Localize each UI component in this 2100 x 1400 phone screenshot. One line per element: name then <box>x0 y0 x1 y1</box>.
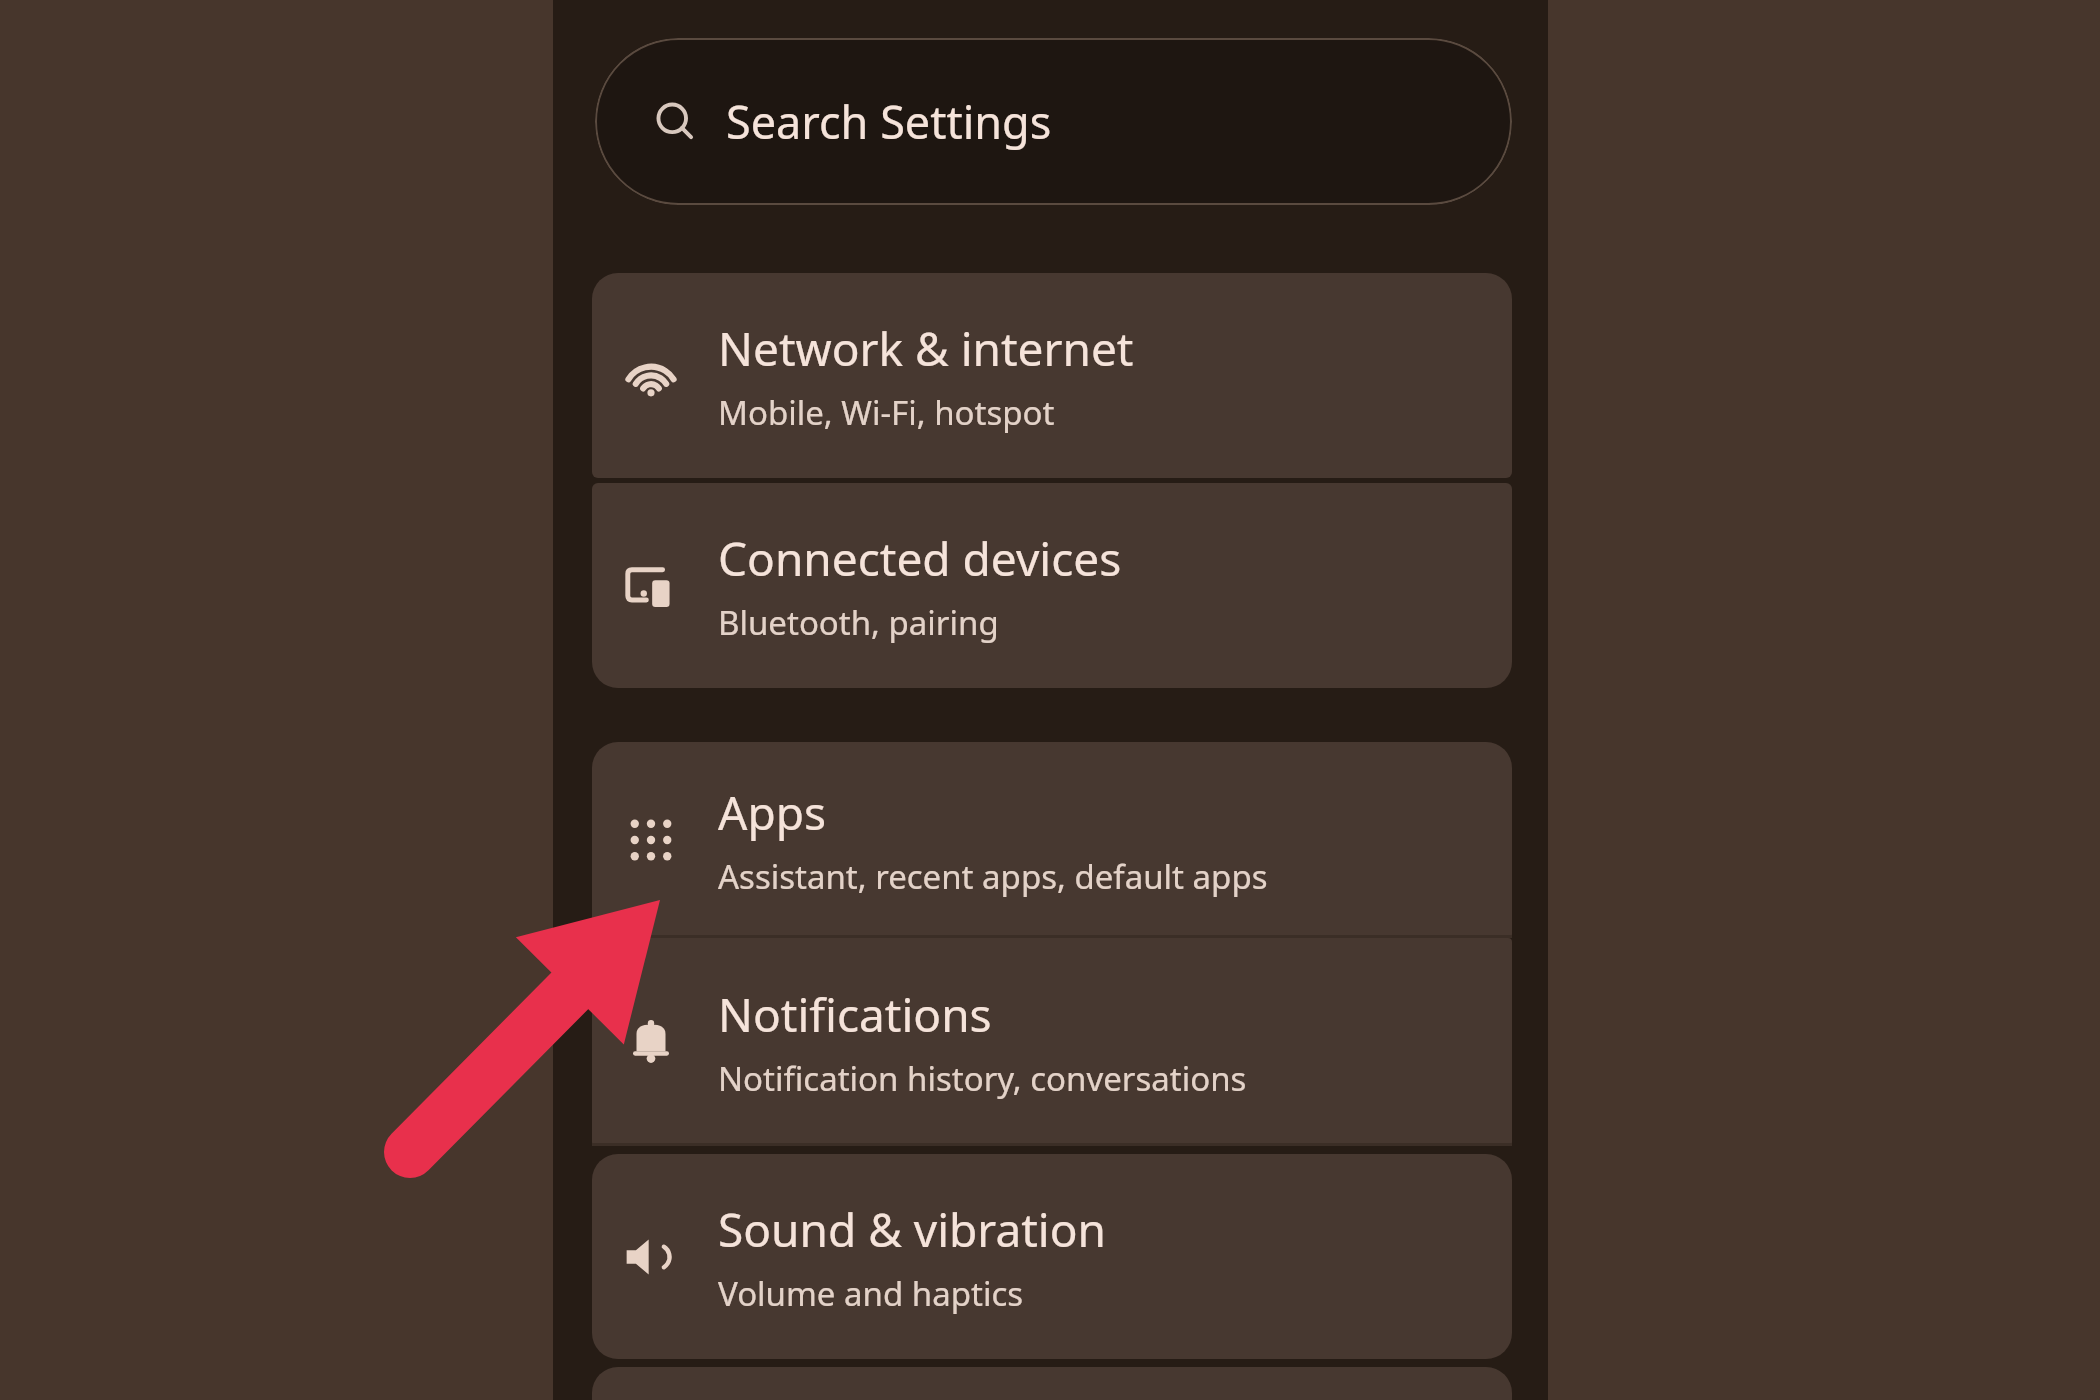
staticText: Bluetooth, pairing <box>718 600 999 645</box>
staticText: Connected devices <box>718 527 1122 590</box>
button[interactable]: Network & internet <box>592 273 1512 478</box>
staticText: Search Settings <box>726 91 1052 152</box>
staticText: Notification history, conversations <box>718 1056 1247 1101</box>
button[interactable]: Sound & vibration <box>592 1154 1512 1359</box>
button[interactable]: Notifications <box>592 938 1512 1146</box>
button[interactable]: Apps <box>592 742 1512 938</box>
button[interactable]: Connected devices <box>592 483 1512 688</box>
staticText: Network & internet <box>718 317 1134 380</box>
button[interactable]: Search Settings <box>595 38 1512 205</box>
staticText: Sound & vibration <box>718 1198 1106 1261</box>
staticText: Notifications <box>718 983 992 1046</box>
staticText: Volume and haptics <box>718 1271 1024 1316</box>
button[interactable] <box>592 1367 1512 1400</box>
staticText: Apps <box>718 781 827 844</box>
staticText: Assistant, recent apps, default apps <box>718 854 1268 899</box>
staticText: Mobile, Wi-Fi, hotspot <box>718 390 1055 435</box>
